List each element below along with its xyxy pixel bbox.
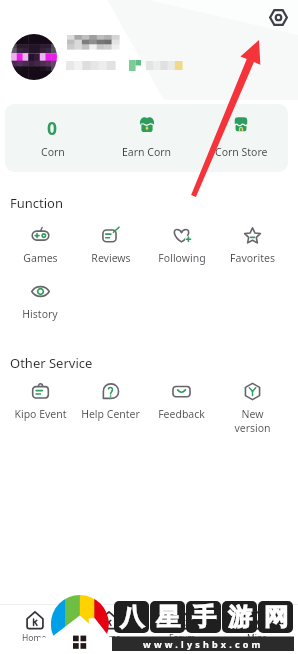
staticText: 游 xyxy=(228,602,252,632)
staticText: Favorites xyxy=(230,251,275,265)
button[interactable]: Game xyxy=(81,604,136,654)
button[interactable]: Mine xyxy=(229,604,284,654)
staticText: History xyxy=(22,307,58,321)
staticText: Corn Store xyxy=(215,145,268,159)
staticText: Following xyxy=(158,251,206,265)
button[interactable]: Kipo Event xyxy=(5,380,75,421)
button[interactable]: 0 xyxy=(5,104,100,172)
staticText: Function xyxy=(10,194,64,212)
button[interactable]: Home xyxy=(7,604,62,654)
staticText: Other Service xyxy=(10,354,93,372)
button[interactable]: Favorites xyxy=(217,224,288,265)
button[interactable]: Reviews xyxy=(75,224,146,265)
staticText: Games xyxy=(23,251,58,265)
staticText: Forum xyxy=(169,632,196,644)
staticText: Feedback xyxy=(158,407,205,421)
staticText: Home xyxy=(22,632,47,644)
button[interactable]: Games xyxy=(5,224,75,265)
staticText: Kipo Event xyxy=(14,407,67,421)
staticText: Corn xyxy=(41,145,65,159)
staticText: 手 xyxy=(192,602,216,632)
staticText: 0 xyxy=(47,116,58,140)
staticText: www.lyshbx.com xyxy=(143,638,264,650)
button[interactable]: Settings xyxy=(268,7,289,28)
button[interactable]: Following xyxy=(146,224,217,265)
staticText: Reviews xyxy=(91,251,131,265)
button[interactable]: History xyxy=(5,280,75,321)
button[interactable]: New version xyxy=(217,380,288,435)
staticText: 八 xyxy=(120,602,144,632)
staticText: New version xyxy=(234,407,271,435)
staticText: Game xyxy=(97,632,121,644)
staticText: Earn Corn xyxy=(122,145,172,159)
button[interactable]: Feedback xyxy=(146,380,217,421)
button[interactable]: Forum xyxy=(155,604,210,654)
staticText: 网 xyxy=(264,602,288,632)
button[interactable]: Help Center xyxy=(75,380,146,421)
button[interactable]: Earn Corn xyxy=(100,104,194,172)
button[interactable]: Corn Store xyxy=(194,104,288,172)
staticText: 星 xyxy=(156,602,180,632)
staticText: Mine xyxy=(247,632,267,644)
staticText: Help Center xyxy=(81,407,140,421)
